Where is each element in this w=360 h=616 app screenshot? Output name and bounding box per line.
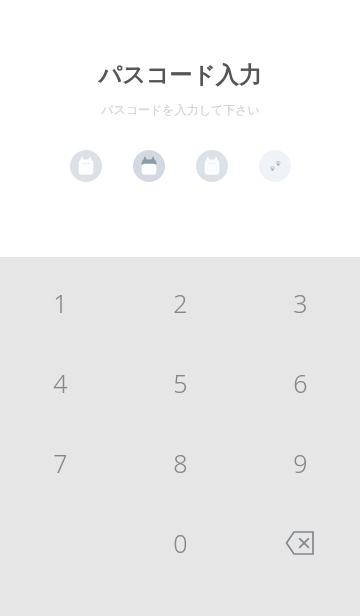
button[interactable]: 9 — [240, 423, 360, 503]
staticText: 7 — [53, 446, 68, 480]
button[interactable]: 6 — [240, 343, 360, 423]
button[interactable]: 8 — [120, 423, 240, 503]
button[interactable]: 4 — [0, 343, 120, 423]
staticText: パスコードを入力して下さい — [101, 102, 260, 117]
staticText: 8 — [173, 446, 188, 480]
button[interactable]: 1 — [0, 263, 120, 343]
staticText: 0 — [173, 526, 188, 560]
staticText: 6 — [293, 366, 308, 400]
staticText: 5 — [173, 366, 188, 400]
staticText: 4 — [53, 366, 68, 400]
button[interactable]: 2 — [120, 263, 240, 343]
button[interactable]: Backspace — [240, 503, 360, 583]
staticText: 2 — [173, 286, 188, 320]
staticText: 1 — [53, 286, 68, 320]
staticText: 3 — [293, 286, 308, 320]
button[interactable]: 5 — [120, 343, 240, 423]
staticText: パスコード入力 — [98, 61, 262, 90]
staticText: 9 — [293, 446, 308, 480]
button[interactable]: 7 — [0, 423, 120, 503]
button[interactable]: 3 — [240, 263, 360, 343]
button[interactable]: 0 — [120, 503, 240, 583]
